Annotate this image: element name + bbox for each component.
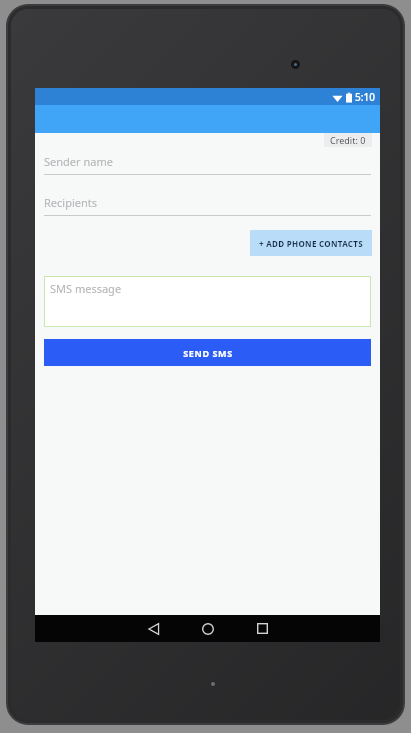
- button[interactable]: Sender name: [44, 154, 371, 175]
- button[interactable]: SMS message: [44, 276, 371, 327]
- staticText: 5:10: [355, 90, 375, 104]
- button[interactable]: Recent apps: [240, 615, 284, 642]
- staticText: Recipients: [44, 195, 98, 210]
- staticText: SMS message: [50, 281, 122, 296]
- staticText: Credit: 0: [330, 134, 366, 146]
- staticText: SEND SMS: [183, 347, 233, 359]
- button[interactable]: + ADD PHONE CONTACTS: [250, 230, 372, 256]
- button[interactable]: Recipients: [44, 195, 371, 216]
- button[interactable]: Home: [186, 615, 230, 642]
- button[interactable]: Back: [132, 615, 176, 642]
- staticText: Sender name: [44, 154, 113, 169]
- button[interactable]: Credit: 0: [324, 133, 372, 147]
- staticText: + ADD PHONE CONTACTS: [259, 238, 363, 249]
- button[interactable]: SEND SMS: [44, 339, 371, 366]
